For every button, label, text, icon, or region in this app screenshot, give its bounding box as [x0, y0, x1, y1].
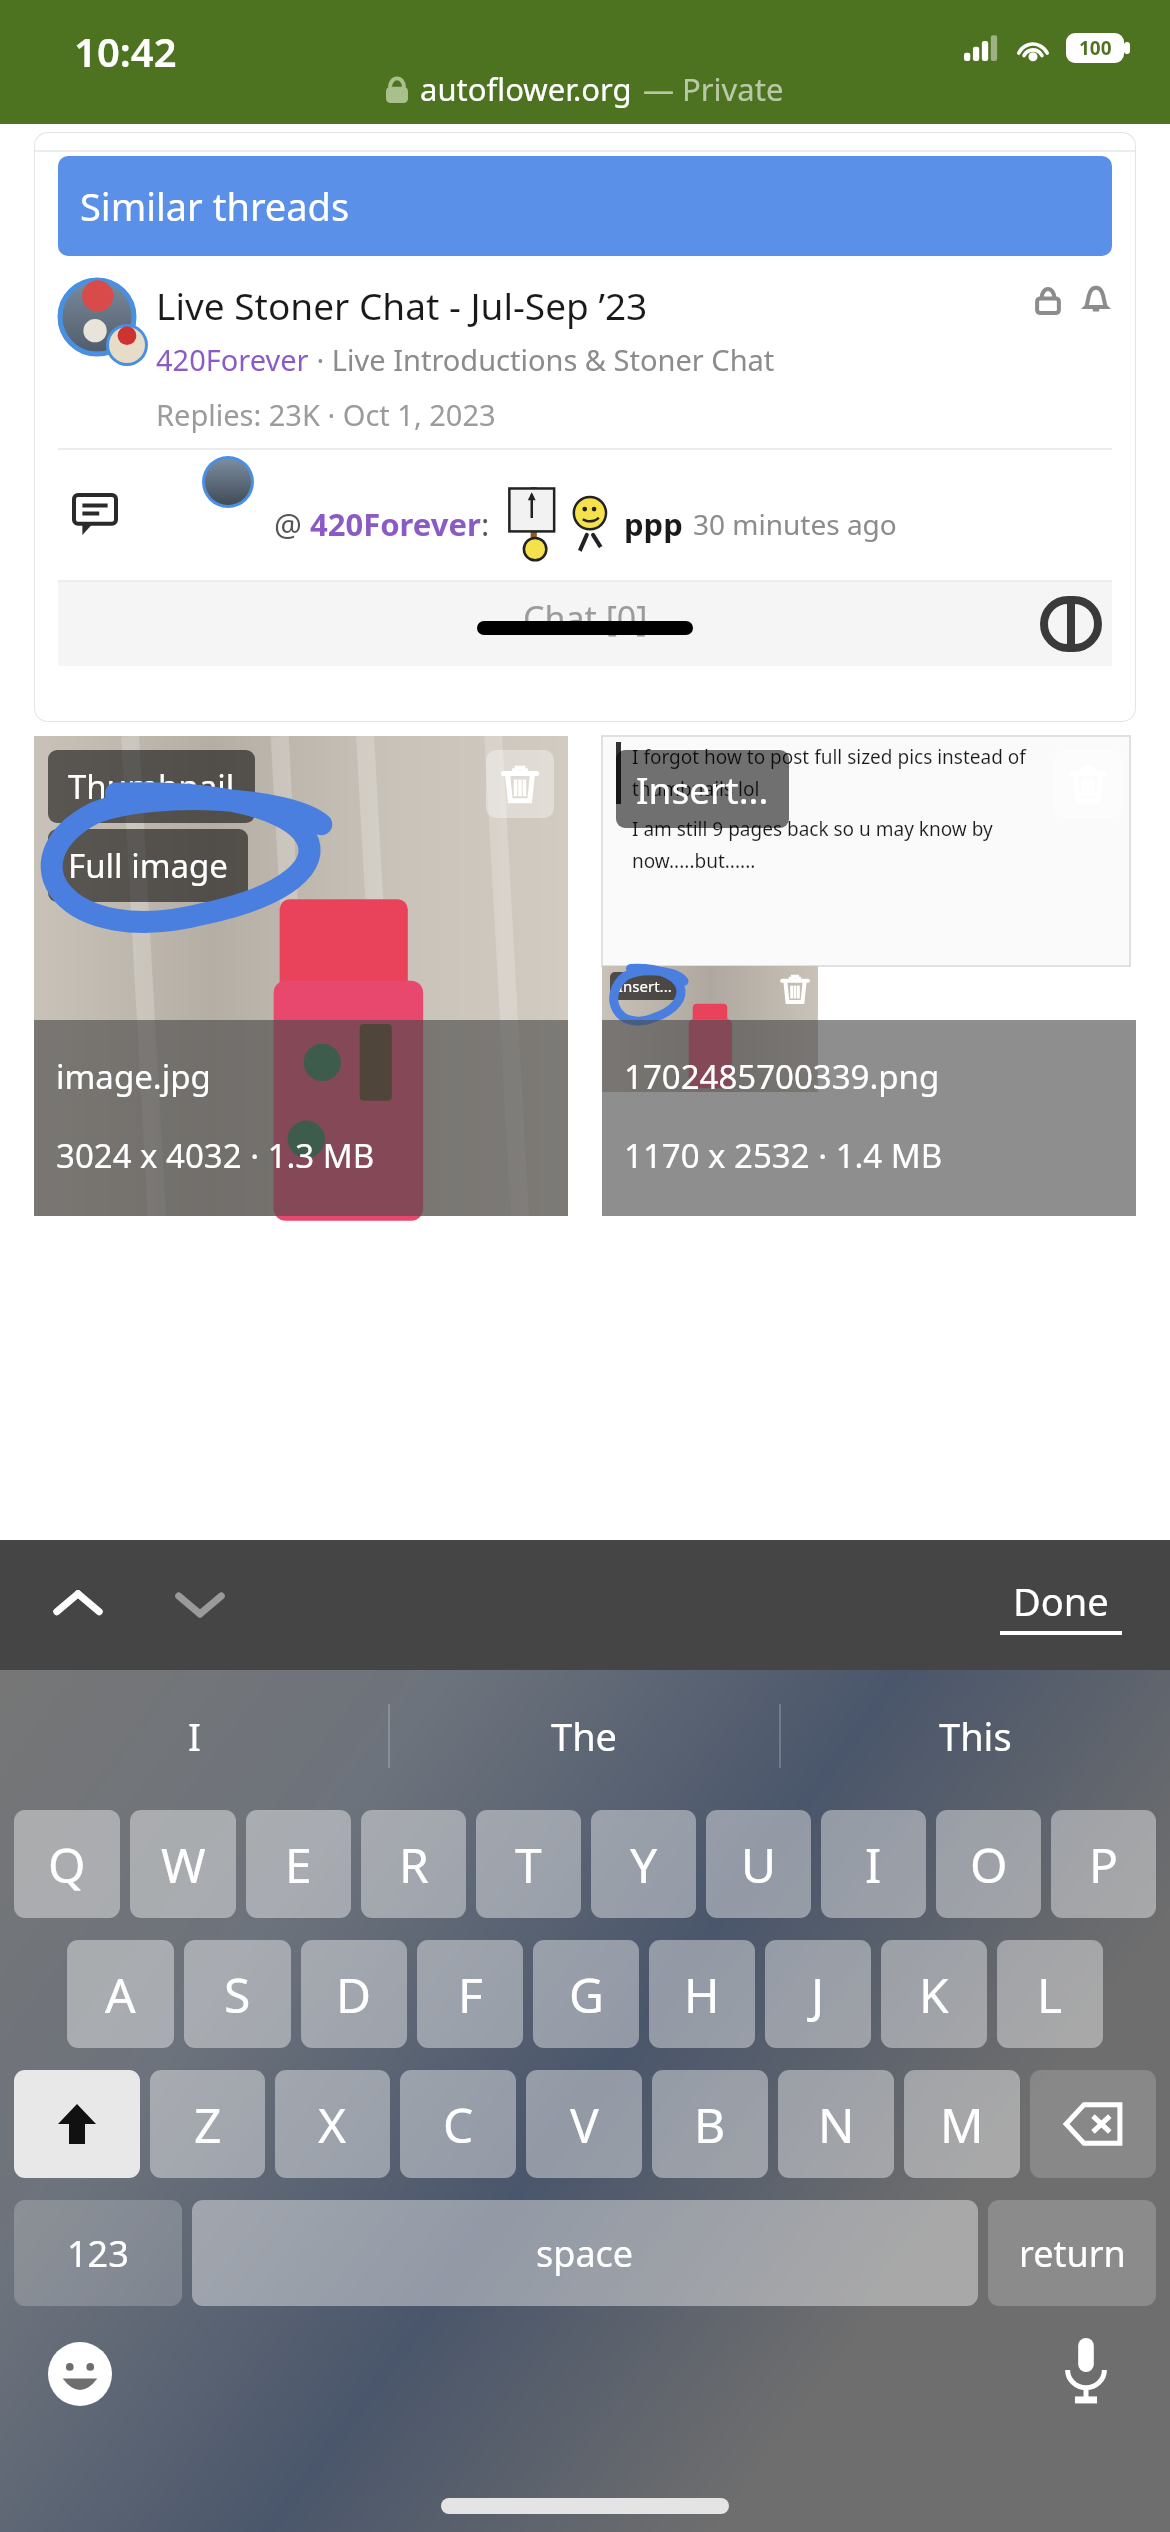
button[interactable]: Insert... — [616, 750, 789, 828]
staticText: 123 — [67, 2229, 129, 2278]
button[interactable]: F — [417, 1940, 523, 2048]
staticText: Chat [0] — [523, 595, 648, 641]
staticText: W — [161, 1832, 206, 1897]
staticText: N — [818, 2092, 855, 2157]
staticText: V — [570, 2092, 599, 2157]
button[interactable]: The — [390, 1670, 779, 1802]
button[interactable]: M — [904, 2070, 1020, 2178]
button[interactable]: B — [652, 2070, 768, 2178]
button[interactable]: D — [301, 1940, 407, 2048]
staticText: · Live Introductions & Stoner Chat — [309, 340, 775, 379]
button[interactable]: Emoji — [40, 2334, 120, 2414]
button[interactable]: P — [1051, 1810, 1156, 1918]
button[interactable]: Z — [150, 2070, 265, 2178]
staticText: Y — [630, 1832, 658, 1897]
staticText: I — [188, 1710, 201, 1762]
button[interactable]: return — [988, 2200, 1156, 2306]
button[interactable]: Next field — [172, 1577, 228, 1633]
staticText: S — [224, 1962, 251, 2027]
button[interactable]: K — [881, 1940, 987, 2048]
staticText: I — [865, 1832, 882, 1897]
button[interactable]: Dictate — [1046, 2330, 1126, 2410]
staticText: 1702485700339.png — [624, 1054, 940, 1099]
staticText: A — [105, 1962, 136, 2027]
staticText: X — [318, 2092, 347, 2157]
other: Locked — [1032, 284, 1064, 316]
button[interactable]: Shift — [14, 2070, 140, 2178]
staticText: space — [536, 2229, 634, 2278]
staticText: H — [684, 1962, 720, 2027]
button[interactable]: R — [361, 1810, 466, 1918]
button[interactable]: Done — [1000, 1575, 1122, 1635]
button[interactable]: space — [192, 2200, 978, 2306]
staticText: autoflower.org — [420, 68, 632, 110]
button[interactable]: I forgot how to post full sized pics ins… — [602, 736, 1136, 1216]
button[interactable]: A — [67, 1940, 174, 2048]
button[interactable]: 123 — [14, 2200, 182, 2306]
button[interactable]: W — [130, 1810, 236, 1918]
staticText: U — [741, 1832, 777, 1897]
button[interactable]: Previous field — [50, 1577, 106, 1633]
staticText: Insert... — [636, 764, 769, 814]
staticText: 1170 x 2532 · 1.4 MB — [624, 1133, 943, 1178]
staticText: L — [1037, 1962, 1063, 2027]
button[interactable]: T — [476, 1810, 581, 1918]
button[interactable]: E — [246, 1810, 351, 1918]
staticText: Replies: 23K · Oct 1, 2023 — [156, 395, 496, 434]
staticText: 10:42 — [74, 24, 177, 78]
button[interactable]: Full image — [48, 829, 248, 902]
staticText: J — [811, 1962, 825, 2027]
staticText: Thumbnail — [68, 764, 235, 809]
staticText: O — [970, 1832, 1008, 1897]
button[interactable]: I — [0, 1670, 388, 1802]
button[interactable]: Thumbnail — [48, 750, 255, 823]
button[interactable]: V — [526, 2070, 642, 2178]
staticText: @ — [274, 503, 310, 545]
button[interactable]: Chat [0] — [58, 582, 1112, 666]
button[interactable]: U — [706, 1810, 811, 1918]
button[interactable]: G — [533, 1940, 639, 2048]
button[interactable]: H — [649, 1940, 755, 2048]
button[interactable]: I — [821, 1810, 926, 1918]
staticText: P — [1089, 1832, 1119, 1897]
staticText: 420Forever — [156, 340, 309, 379]
staticText: Q — [48, 1832, 86, 1897]
button[interactable]: Delete attachment — [486, 750, 554, 818]
button[interactable]: Y — [591, 1810, 696, 1918]
staticText: C — [443, 2092, 474, 2157]
button[interactable]: C — [400, 2070, 516, 2178]
staticText: R — [399, 1832, 429, 1897]
button[interactable]: This — [781, 1670, 1170, 1802]
button[interactable]: Backspace — [1030, 2070, 1156, 2178]
staticText: — Private — [643, 68, 784, 110]
staticText: B — [694, 2092, 726, 2157]
button[interactable]: L — [997, 1940, 1103, 2048]
button[interactable]: J — [765, 1940, 871, 2048]
staticText: K — [919, 1962, 949, 2027]
staticText: M — [940, 2092, 984, 2157]
other: Delete — [778, 972, 812, 1006]
button[interactable]: S — [184, 1940, 291, 2048]
button[interactable]: Messages — [34, 450, 1136, 580]
button[interactable]: Live Stoner Chat - Jul-Sep ’23 — [58, 278, 1112, 434]
staticText: I forgot how to post full sized pics ins… — [632, 744, 1026, 770]
staticText: Done — [1013, 1575, 1109, 1627]
staticText: F — [458, 1962, 483, 2027]
button[interactable]: Thumbnail — [34, 736, 568, 1216]
staticText: 420Forever — [310, 503, 481, 545]
staticText: ppp — [624, 503, 683, 545]
staticText: now.....but...... — [632, 848, 756, 874]
staticText: image.jpg — [56, 1054, 211, 1099]
button[interactable]: Similar threads — [58, 156, 1112, 256]
button[interactable]: N — [778, 2070, 894, 2178]
button[interactable]: X — [275, 2070, 390, 2178]
staticText: Full image — [68, 843, 228, 888]
button[interactable]: Q — [14, 1810, 120, 1918]
other: Toggle chat — [1044, 600, 1098, 648]
staticText: T — [515, 1832, 542, 1897]
staticText: Live Stoner Chat - Jul-Sep ’23 — [156, 280, 648, 330]
other: Notifications — [1080, 284, 1112, 316]
staticText: 30 minutes ago — [693, 505, 897, 543]
button[interactable]: O — [936, 1810, 1041, 1918]
